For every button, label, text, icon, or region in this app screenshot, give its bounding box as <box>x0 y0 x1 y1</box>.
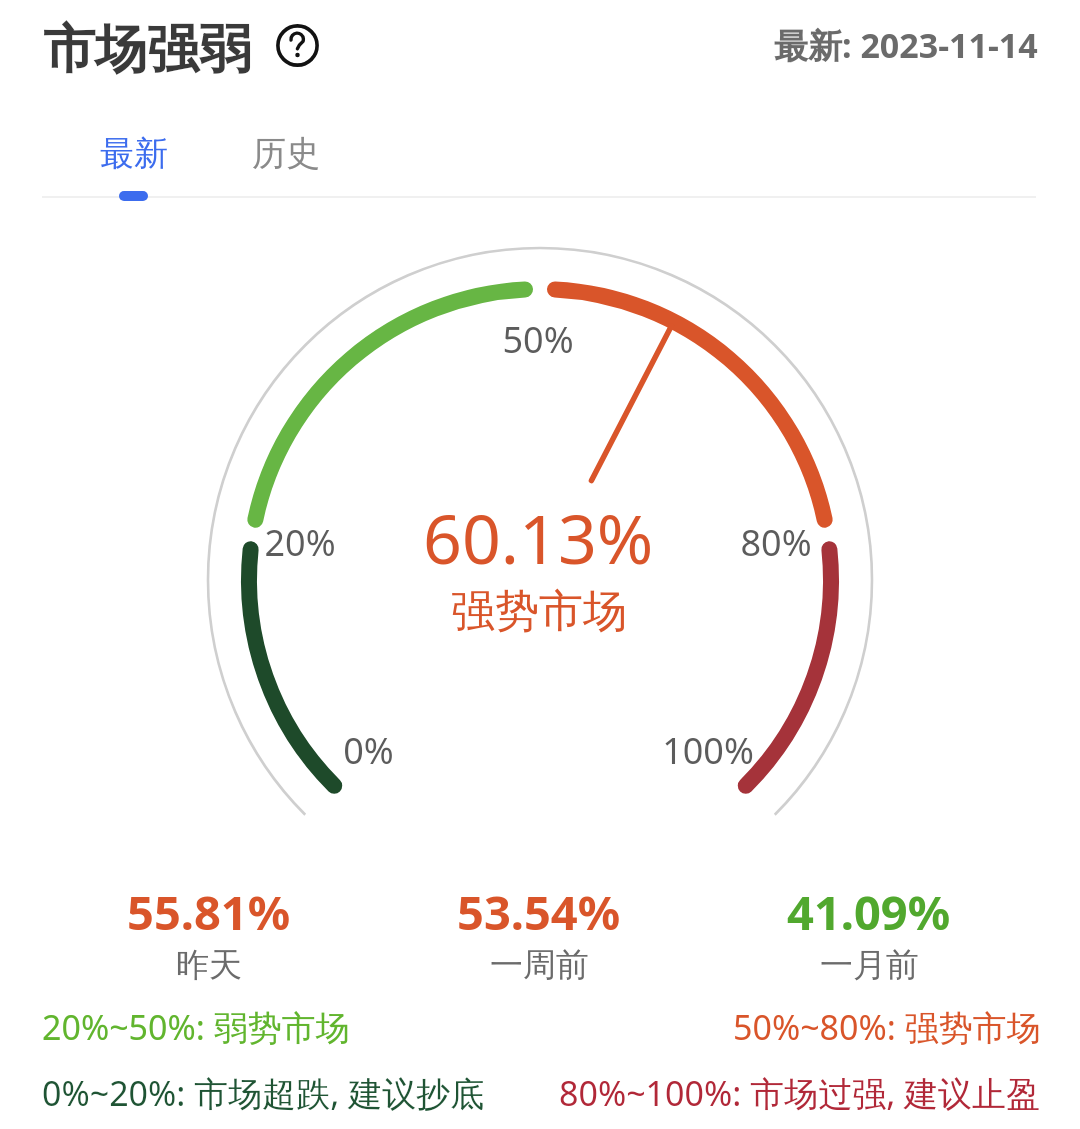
staticText: 20%~50%: 弱势市场 <box>42 1004 350 1050</box>
staticText: 一周前 <box>490 944 589 986</box>
staticText: 强势市场 <box>451 584 627 639</box>
button[interactable]: 最新 <box>74 110 194 196</box>
staticText: 0%~20%: 市场超跌, 建议抄底 <box>42 1070 485 1116</box>
staticText: 20% <box>264 518 336 567</box>
staticText: 53.54% <box>457 880 621 944</box>
staticText: 50% <box>502 315 574 364</box>
staticText: 60.13% <box>423 491 654 584</box>
staticText: 80%~100%: 市场过强, 建议止盈 <box>559 1070 1041 1116</box>
button[interactable]: 历史 <box>226 110 346 196</box>
staticText: 市场强弱 <box>43 17 251 83</box>
staticText: 历史 <box>252 132 320 175</box>
staticText: 50%~80%: 强势市场 <box>733 1004 1041 1050</box>
button[interactable]: 41.09% <box>719 880 1019 990</box>
staticText: 0% <box>343 726 394 775</box>
staticText: 昨天 <box>176 944 242 986</box>
staticText: 最新: 2023-11-14 <box>774 22 1038 68</box>
staticText: 最新 <box>100 132 168 175</box>
button[interactable]: 55.81% <box>59 880 359 990</box>
staticText: 一月前 <box>820 944 919 986</box>
staticText: 55.81% <box>127 880 291 944</box>
button[interactable]: 53.54% <box>389 880 689 990</box>
staticText: 41.09% <box>787 880 951 944</box>
button[interactable]: Help <box>276 24 319 67</box>
staticText: 80% <box>740 518 812 567</box>
staticText: 100% <box>662 726 754 775</box>
